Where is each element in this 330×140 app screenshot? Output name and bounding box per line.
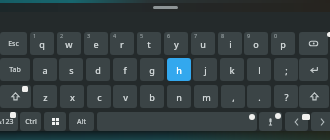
button[interactable]: f — [113, 58, 137, 81]
staticText: s — [69, 64, 74, 76]
staticText: 6 — [167, 32, 171, 39]
staticText: i — [229, 38, 232, 50]
staticText: . — [258, 91, 261, 103]
staticText: a — [42, 64, 48, 76]
staticText: u — [200, 38, 206, 50]
staticText: k — [229, 64, 235, 76]
staticText: z — [43, 91, 48, 103]
button[interactable]: t — [137, 32, 161, 55]
button[interactable]: Alt — [69, 112, 94, 131]
button[interactable]: d — [86, 58, 110, 81]
button[interactable]: . — [247, 85, 271, 108]
button[interactable]: Escape — [0, 32, 27, 55]
staticText: , — [232, 91, 235, 103]
staticText: r — [120, 38, 124, 50]
staticText: o — [253, 38, 259, 50]
staticText: c — [97, 91, 102, 103]
button[interactable]: s — [59, 58, 83, 81]
staticText: 8 — [221, 32, 225, 39]
staticText: q — [39, 38, 45, 50]
staticText: 1 — [33, 32, 37, 39]
staticText: y — [174, 38, 179, 50]
button[interactable]: i — [218, 32, 242, 55]
staticText: j — [204, 64, 207, 76]
button[interactable]: p — [271, 32, 295, 55]
staticText: x — [70, 91, 75, 103]
button[interactable]: b — [140, 85, 164, 108]
staticText: b — [149, 91, 155, 103]
staticText: 0 — [274, 32, 278, 39]
staticText: m — [202, 91, 211, 103]
button[interactable]: Backspace — [299, 32, 328, 55]
staticText: d — [95, 64, 101, 76]
button[interactable]: Microphone — [259, 112, 282, 131]
button[interactable]: r — [110, 32, 134, 55]
staticText: 3 — [87, 32, 91, 39]
staticText: 7 — [194, 32, 198, 39]
staticText: n — [176, 91, 182, 103]
staticText: g — [149, 64, 155, 76]
staticText: Tab — [9, 65, 21, 75]
button[interactable]: h — [167, 58, 191, 81]
button[interactable]: Numbers and symbols — [0, 112, 18, 131]
staticText: p — [280, 38, 286, 50]
button[interactable]: e — [84, 32, 108, 55]
button[interactable]: ; — [274, 58, 298, 81]
staticText: Ctrl — [25, 117, 37, 127]
button[interactable]: y — [164, 32, 188, 55]
staticText: e — [93, 38, 99, 50]
staticText: ; — [285, 64, 288, 76]
button[interactable]: , — [221, 85, 245, 108]
button[interactable]: z — [33, 85, 57, 108]
staticText: h — [176, 64, 182, 76]
button[interactable]: Control — [20, 112, 41, 131]
button[interactable]: ? — [274, 85, 298, 108]
staticText: t — [147, 38, 151, 50]
staticText: 4 — [113, 32, 117, 39]
button[interactable]: v — [113, 85, 137, 108]
button[interactable]: q — [30, 32, 54, 55]
button[interactable]: n — [167, 85, 191, 108]
staticText: l — [258, 64, 261, 76]
staticText: Esc — [8, 39, 19, 49]
button[interactable]: Tab — [0, 58, 30, 81]
button[interactable]: Shift — [0, 85, 31, 108]
staticText: 9 — [247, 32, 251, 39]
staticText: &123 — [0, 117, 14, 127]
button[interactable]: l — [247, 58, 271, 81]
button[interactable]: w — [57, 32, 81, 55]
button[interactable]: Next — [311, 112, 330, 131]
staticText: v — [123, 91, 128, 103]
staticText: 5 — [140, 32, 144, 39]
button[interactable]: Shift — [299, 85, 329, 108]
button[interactable]: o — [244, 32, 268, 55]
button[interactable]: m — [194, 85, 218, 108]
staticText: Alt — [77, 117, 86, 127]
button[interactable]: g — [140, 58, 164, 81]
staticText: w — [65, 38, 73, 50]
button[interactable]: k — [220, 58, 244, 81]
staticText: ? — [284, 91, 289, 103]
staticText: 2 — [60, 32, 64, 39]
button[interactable]: c — [87, 85, 111, 108]
button[interactable]: Previous — [285, 112, 308, 131]
button[interactable]: u — [191, 32, 215, 55]
staticText: f — [123, 64, 127, 76]
button[interactable]: a — [33, 58, 57, 81]
button[interactable]: j — [193, 58, 217, 81]
button[interactable]: x — [60, 85, 84, 108]
button[interactable]: Windows — [44, 112, 66, 131]
button[interactable]: Space — [97, 112, 257, 131]
button[interactable]: Enter — [299, 58, 328, 81]
